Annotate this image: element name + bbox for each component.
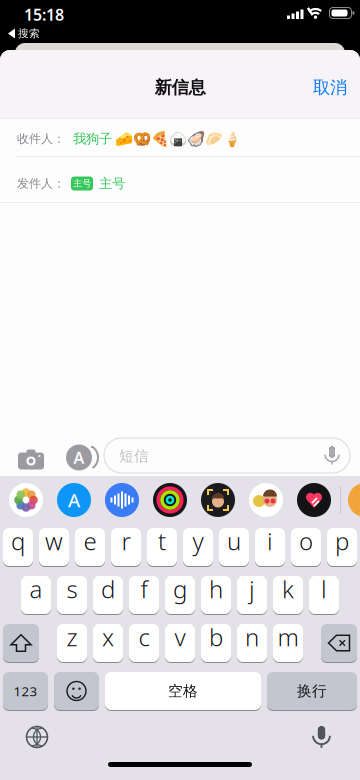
button[interactable]: Back to Search: [8, 27, 88, 40]
staticText: 取消: [313, 77, 347, 98]
staticText: v: [174, 621, 185, 653]
button[interactable]: Camera: [18, 448, 44, 468]
button[interactable]: o: [291, 528, 321, 566]
staticText: i: [267, 525, 273, 557]
staticText: 发件人：: [17, 176, 65, 191]
button[interactable]: 发件人：: [0, 157, 360, 202]
button[interactable]: h: [201, 576, 231, 614]
staticText: f: [140, 573, 147, 605]
staticText: x: [102, 621, 114, 653]
staticText: 我狗子: [73, 131, 112, 147]
button[interactable]: e: [75, 528, 105, 566]
button[interactable]: Stickers: [249, 483, 283, 517]
staticText: l: [321, 573, 327, 605]
staticText: w: [45, 525, 63, 557]
staticText: A: [68, 488, 80, 512]
staticText: 搜索: [18, 27, 40, 40]
button[interactable]: a: [21, 576, 51, 614]
button[interactable]: Text Message: [104, 438, 350, 473]
button[interactable]: Delete: [321, 624, 357, 662]
staticText: 收件人：: [17, 131, 65, 146]
button[interactable]: Activity: [153, 483, 187, 517]
button[interactable]: v: [165, 624, 195, 662]
staticText: 短信: [119, 447, 149, 465]
staticText: c: [138, 621, 149, 653]
button[interactable]: y: [183, 528, 213, 566]
staticText: t: [158, 525, 166, 557]
button[interactable]: q: [3, 528, 33, 566]
button[interactable]: Dictation: [313, 726, 330, 748]
staticText: m: [277, 621, 298, 653]
button[interactable]: m: [273, 624, 303, 662]
staticText: 15:18: [24, 4, 64, 25]
button[interactable]: z: [57, 624, 87, 662]
staticText: a: [29, 573, 42, 605]
staticText: e: [83, 525, 96, 557]
button[interactable]: Shift: [3, 624, 39, 662]
button[interactable]: k: [273, 576, 303, 614]
button[interactable]: s: [57, 576, 87, 614]
button[interactable]: Emoji: [54, 672, 99, 710]
staticText: 换行: [297, 682, 327, 700]
button[interactable]: 取消: [313, 77, 347, 98]
button[interactable]: Audio: [105, 483, 139, 517]
staticText: s: [66, 573, 77, 605]
button[interactable]: 换行: [267, 672, 357, 710]
staticText: h: [209, 573, 223, 605]
button[interactable]: c: [129, 624, 159, 662]
button[interactable]: Apps: [66, 443, 99, 471]
button[interactable]: u: [219, 528, 249, 566]
button[interactable]: 123: [3, 672, 48, 710]
button[interactable]: j: [237, 576, 267, 614]
button[interactable]: f: [129, 576, 159, 614]
button[interactable]: l: [309, 576, 339, 614]
button[interactable]: d: [93, 576, 123, 614]
staticText: r: [121, 525, 130, 557]
button[interactable]: i: [255, 528, 285, 566]
staticText: n: [245, 621, 259, 653]
button[interactable]: r: [111, 528, 141, 566]
button[interactable]: Digital Touch: [297, 483, 331, 517]
staticText: u: [227, 525, 241, 557]
button[interactable]: 空格: [105, 672, 261, 710]
button[interactable]: x: [93, 624, 123, 662]
staticText: g: [173, 573, 187, 605]
staticText: 主号: [73, 178, 91, 189]
button[interactable]: Memoji: [201, 483, 235, 517]
button[interactable]: Next Keyboard: [26, 726, 47, 747]
staticText: p: [335, 525, 349, 557]
staticText: 空格: [168, 682, 198, 700]
button[interactable]: b: [201, 624, 231, 662]
button[interactable]: 收件人：: [0, 118, 360, 156]
staticText: z: [66, 621, 77, 653]
button[interactable]: p: [327, 528, 357, 566]
staticText: A: [73, 447, 84, 468]
button[interactable]: App Store: [57, 483, 91, 517]
button[interactable]: n: [237, 624, 267, 662]
staticText: o: [299, 525, 313, 557]
staticText: 新信息: [154, 77, 205, 98]
staticText: y: [192, 525, 203, 557]
staticText: q: [11, 525, 25, 557]
button[interactable]: Photos: [9, 483, 43, 517]
staticText: 主号: [99, 175, 125, 192]
staticText: b: [209, 621, 223, 653]
button[interactable]: w: [39, 528, 69, 566]
staticText: 123: [13, 682, 37, 700]
button[interactable]: t: [147, 528, 177, 566]
button[interactable]: g: [165, 576, 195, 614]
staticText: 🧀🥨🍕🍙🦪🥟🍦: [115, 130, 241, 147]
staticText: d: [101, 573, 115, 605]
staticText: j: [249, 573, 255, 605]
staticText: k: [282, 573, 294, 605]
